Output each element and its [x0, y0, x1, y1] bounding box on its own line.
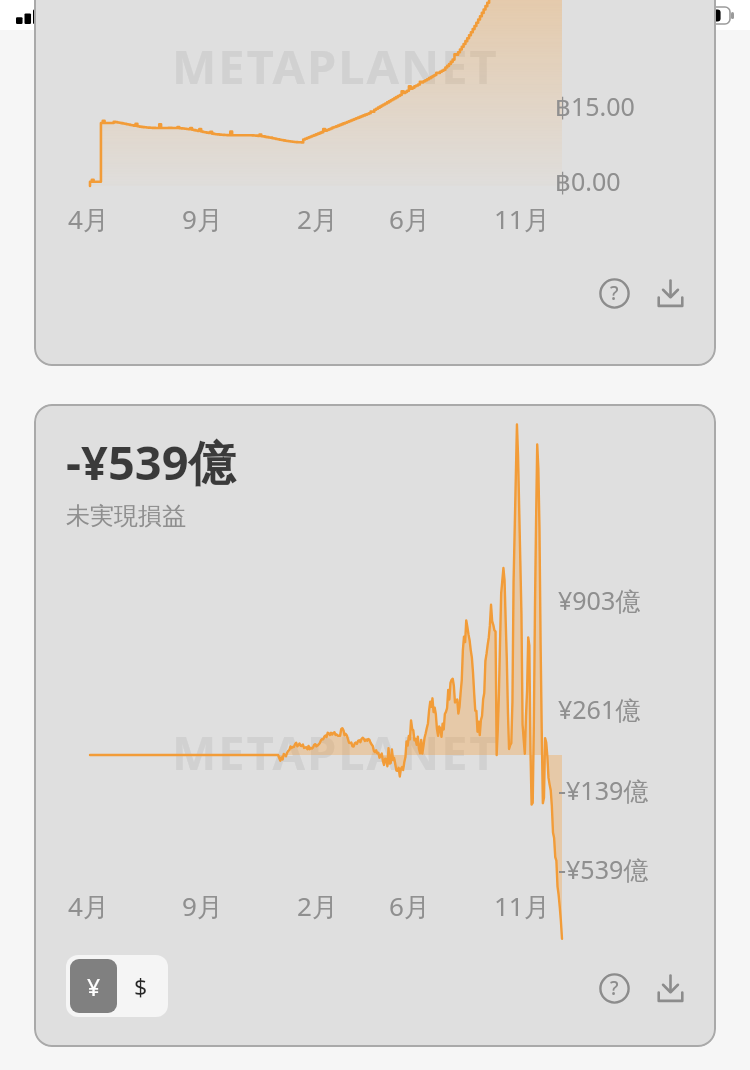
- staticText: 6月: [389, 888, 430, 924]
- staticText: 11月: [494, 201, 550, 237]
- staticText: 4月: [68, 201, 109, 237]
- button[interactable]: Help: [592, 966, 636, 1010]
- staticText: ?: [610, 975, 619, 1001]
- staticText: 4月: [68, 888, 109, 924]
- staticText: 6月: [389, 201, 430, 237]
- staticText: ¥903億: [558, 583, 641, 617]
- button[interactable]: Download: [648, 966, 692, 1010]
- staticText: 2月: [297, 888, 338, 924]
- button[interactable]: ¥: [70, 959, 117, 1013]
- button[interactable]: Help: [592, 271, 636, 315]
- staticText: ¥261億: [558, 692, 641, 726]
- staticText: ¥: [87, 971, 101, 1002]
- staticText: ฿15.00: [555, 89, 635, 123]
- staticText: 2月: [297, 201, 338, 237]
- staticText: $: [134, 971, 148, 1002]
- staticText: -¥539億: [558, 852, 649, 886]
- staticText: 9月: [182, 888, 223, 924]
- button[interactable]: -¥539億: [34, 404, 716, 1047]
- staticText: ?: [610, 280, 619, 306]
- staticText: -¥139億: [558, 773, 649, 807]
- staticText: METAPLANET: [172, 34, 499, 98]
- staticText: ฿0.00: [555, 164, 621, 198]
- button[interactable]: $: [117, 959, 164, 1013]
- staticText: -¥539億: [66, 430, 236, 494]
- button[interactable]: Download: [648, 271, 692, 315]
- staticText: 11月: [494, 888, 550, 924]
- staticText: METAPLANET: [172, 720, 499, 784]
- staticText: 9月: [182, 201, 223, 237]
- button[interactable]: METAPLANET: [34, 0, 716, 366]
- staticText: 未実現損益: [66, 501, 186, 531]
